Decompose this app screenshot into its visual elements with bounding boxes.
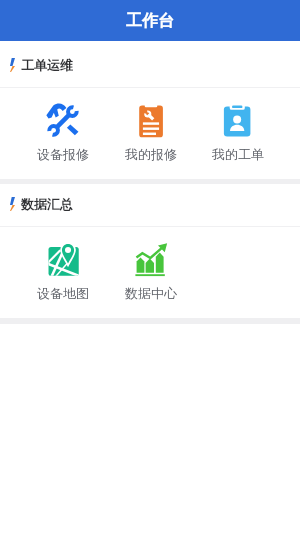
staticText: 我的报修 [125, 146, 177, 162]
button[interactable]: 设备地图 [19, 227, 107, 318]
staticText: 设备报修 [37, 146, 89, 162]
staticText: 工单运维 [21, 57, 73, 73]
staticText: 我的工单 [212, 146, 264, 162]
staticText: 数据汇总 [21, 196, 73, 212]
button[interactable]: 我的报修 [107, 88, 194, 179]
staticText: 数据中心 [125, 285, 177, 301]
staticText: 工作台 [126, 11, 174, 31]
button[interactable]: 数据中心 [107, 227, 194, 318]
staticText: 设备地图 [37, 285, 89, 301]
button[interactable]: 设备报修 [19, 88, 107, 179]
button[interactable]: 我的工单 [194, 88, 281, 179]
